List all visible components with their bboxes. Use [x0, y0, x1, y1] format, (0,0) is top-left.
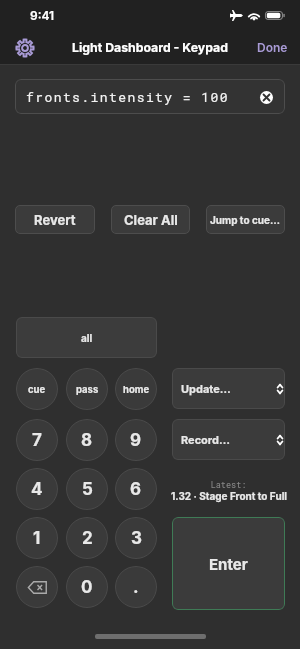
staticText: 9:41	[30, 8, 55, 23]
staticText: 9	[130, 430, 142, 451]
staticText: pass	[76, 384, 99, 395]
button[interactable]: Settings	[11, 34, 39, 62]
button[interactable]: fronts.intensity = 100	[15, 79, 285, 114]
button[interactable]: pass	[66, 368, 108, 410]
staticText: fronts.intensity = 100	[26, 88, 229, 105]
staticText: 2	[82, 528, 93, 549]
button[interactable]: Clear text	[257, 88, 275, 106]
button[interactable]: 8	[66, 419, 108, 461]
staticText: Light Dashboard - Keypad	[72, 40, 228, 55]
staticText: 7	[32, 430, 42, 451]
button[interactable]: 4	[16, 468, 58, 510]
button[interactable]: 1	[16, 517, 58, 559]
button[interactable]: .	[115, 566, 157, 608]
staticText: Latest:	[172, 479, 285, 490]
staticText: 5	[82, 479, 93, 500]
staticText: 3	[131, 528, 142, 549]
button[interactable]: 6	[115, 468, 157, 510]
button[interactable]: 2	[66, 517, 108, 559]
staticText: 6	[130, 479, 142, 500]
button[interactable]: 5	[66, 468, 108, 510]
button[interactable]: 0	[66, 566, 108, 608]
staticText: 4	[31, 479, 43, 500]
button[interactable]: Revert	[15, 205, 95, 234]
button[interactable]: home	[115, 368, 157, 410]
staticText: Record…	[181, 433, 231, 446]
staticText: Enter	[209, 555, 248, 573]
staticText: Clear All	[124, 212, 178, 228]
button[interactable]: Jump to cue…	[206, 205, 285, 234]
button[interactable]: 3	[115, 517, 157, 559]
staticText: 1	[33, 528, 41, 549]
button[interactable]: Enter	[172, 517, 285, 610]
staticText: Jump to cue…	[210, 214, 281, 226]
staticText: home	[123, 384, 150, 395]
button[interactable]: cue	[16, 368, 58, 410]
staticText: Done	[257, 40, 288, 55]
staticText: 8	[81, 430, 93, 451]
staticText: 1.32 · Stage Front to Full	[159, 490, 299, 502]
button[interactable]: all	[16, 317, 157, 358]
button[interactable]: 7	[16, 419, 58, 461]
button[interactable]: Record…	[172, 419, 285, 460]
button[interactable]: Backspace	[16, 566, 58, 608]
staticText: .	[133, 577, 139, 598]
staticText: Revert	[34, 212, 76, 228]
button[interactable]: Update…	[172, 368, 285, 409]
staticText: Update…	[181, 382, 231, 395]
staticText: 0	[81, 577, 93, 598]
staticText: cue	[28, 384, 46, 395]
button[interactable]: Clear All	[111, 205, 190, 234]
button[interactable]: Done	[257, 40, 288, 55]
staticText: all	[81, 332, 93, 344]
button[interactable]: 9	[115, 419, 157, 461]
